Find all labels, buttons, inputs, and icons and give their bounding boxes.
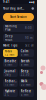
staticText: Breathe [4,59,16,63]
staticText: Calm [21,49,29,53]
staticText: 2 L [4,93,8,96]
button[interactable]: Breathe [3,59,18,67]
button[interactable]: Walk [19,79,34,87]
staticText: Your day, sorted [3,7,23,10]
staticText: ▪▪▮ [29,0,34,3]
staticText: 3 min [4,63,12,66]
staticText: Journal [4,69,15,73]
staticText: Hydrate [4,89,15,93]
staticText: See all [25,44,34,47]
staticText: Daily [4,73,10,76]
staticText: 20 min [21,83,31,86]
button[interactable]: Stretch [19,59,34,67]
staticText: 5 min [21,53,29,56]
button[interactable]: Hydrate [3,89,18,97]
button[interactable]: Sleep [19,69,34,77]
staticText: 8:00 [25,26,32,30]
staticText: 9:41 [3,0,10,4]
staticText: 12 min [4,53,14,56]
staticText: 90 m [25,36,32,40]
staticText: 22:30 [21,73,30,76]
staticText: Deep Focus [5,34,13,42]
staticText: 8 min [21,63,29,66]
button[interactable]: See all [25,44,34,47]
staticText: Morning Plan [5,24,17,32]
button[interactable]: Morning Plan [3,24,34,32]
staticText: Reflect [21,89,31,93]
staticText: Focus [4,49,11,53]
button[interactable]: Focus [3,49,18,57]
button[interactable]: Journal [3,69,18,77]
staticText: More Tips [3,44,17,47]
staticText: Stretch [21,59,30,63]
button[interactable]: Start Session [3,13,34,21]
button[interactable]: Reflect [19,89,34,97]
staticText: 4 min [21,93,29,96]
staticText: Recharge [4,79,16,83]
staticText: Start Session [10,15,27,19]
button[interactable]: Recharge [3,79,18,87]
staticText: 15 min [4,83,14,86]
staticText: Sleep [21,69,29,73]
staticText: Walk [21,79,28,83]
button[interactable]: Deep Focus [3,34,34,42]
button[interactable]: Profile [31,7,34,10]
button[interactable]: Calm [19,49,34,57]
